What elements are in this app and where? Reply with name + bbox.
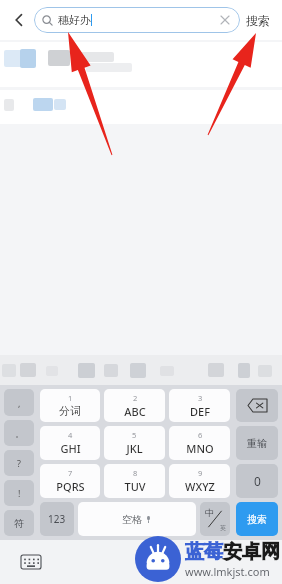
staticText: 分词 <box>59 404 81 418</box>
button[interactable]: 3 <box>169 389 230 422</box>
button[interactable]: 9 <box>169 464 230 498</box>
staticText: 9 <box>198 468 203 478</box>
staticText: 英 <box>220 524 226 532</box>
staticText: 8 <box>133 468 138 478</box>
staticText: 搜索 <box>246 13 270 28</box>
staticText: JKL <box>126 441 143 456</box>
button[interactable]: 符 <box>4 510 34 536</box>
button[interactable]: ! <box>4 480 34 506</box>
button[interactable]: 。 <box>4 420 34 446</box>
button[interactable]: Back <box>6 7 32 33</box>
staticText: 5 <box>132 430 137 440</box>
staticText: www.lmkjst.com <box>185 564 270 579</box>
button[interactable]: 重输 <box>236 426 278 460</box>
staticText: 重输 <box>247 437 267 450</box>
staticText: 2 <box>133 393 138 403</box>
staticText: 穗好办 <box>58 13 91 27</box>
staticText: 0 <box>254 473 261 489</box>
button[interactable]: Hide keyboard <box>18 552 44 572</box>
staticText: 4 <box>68 430 73 440</box>
staticText: 符 <box>14 517 24 530</box>
staticText: 3 <box>198 393 203 403</box>
button[interactable]: 4 <box>40 426 100 460</box>
staticText: 中 <box>205 507 214 518</box>
staticText: 蓝莓 <box>185 540 223 564</box>
button[interactable]: 搜索 <box>236 502 278 536</box>
button[interactable]: 6 <box>169 426 230 460</box>
staticText: , <box>18 397 21 409</box>
button[interactable]: ? <box>4 450 34 476</box>
button[interactable]: 空格 <box>78 502 196 536</box>
staticText: 搜索 <box>247 513 267 526</box>
button[interactable]: 搜索 <box>246 13 270 28</box>
button[interactable]: 123 <box>40 502 74 536</box>
button[interactable]: 5 <box>104 426 165 460</box>
staticText: 7 <box>68 468 73 478</box>
button[interactable]: 1 <box>40 389 100 422</box>
staticText: MNO <box>186 441 214 456</box>
staticText: ABC <box>124 404 146 419</box>
staticText: 123 <box>48 512 66 526</box>
button[interactable]: 8 <box>104 464 165 498</box>
staticText: 1 <box>68 393 73 403</box>
button[interactable]: 中 <box>200 502 230 536</box>
button[interactable]: 7 <box>40 464 100 498</box>
button[interactable]: 2 <box>104 389 165 422</box>
staticText: 安卓网 <box>223 540 280 564</box>
staticText: TUV <box>124 479 146 494</box>
staticText: 6 <box>198 430 203 440</box>
staticText: 空格 <box>122 513 142 526</box>
button[interactable]: 穗好办 <box>34 7 240 33</box>
staticText: PQRS <box>56 479 85 494</box>
button[interactable]: 0 <box>236 464 278 498</box>
button[interactable]: , <box>4 389 34 416</box>
staticText: GHI <box>60 441 81 456</box>
staticText: ! <box>18 487 21 499</box>
staticText: 。 <box>15 428 24 439</box>
button[interactable]: Clear <box>218 13 232 27</box>
button[interactable]: Backspace <box>236 389 278 422</box>
staticText: DEF <box>190 404 210 419</box>
staticText: ? <box>17 457 21 469</box>
staticText: WXYZ <box>185 479 215 494</box>
